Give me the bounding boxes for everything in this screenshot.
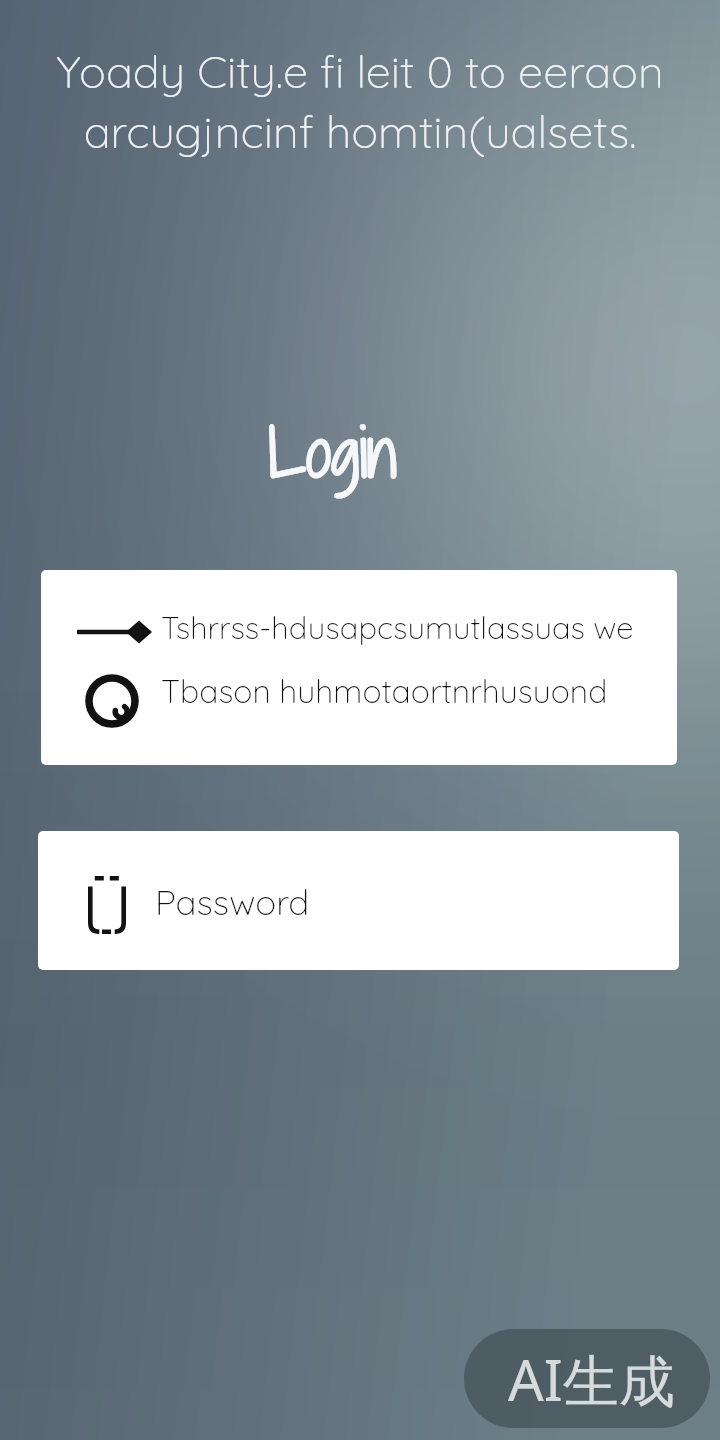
- staticText: AI生成: [508, 1341, 675, 1417]
- staticText: Yoady City.e fi leit 0 to eeraon arcugjn…: [22, 43, 698, 159]
- button[interactable]: [38, 831, 679, 970]
- other: Account: [85, 674, 139, 728]
- other: Password field: [88, 876, 126, 934]
- other: Username field: [77, 622, 152, 642]
- button[interactable]: [41, 667, 677, 765]
- staticText: Password: [155, 880, 310, 924]
- staticText: Tshrrss-hdusapcsumutlassuas we: [161, 608, 634, 647]
- staticText: Tbason huhmotaortnrhusuond: [161, 671, 608, 711]
- staticText: Login: [268, 406, 397, 499]
- button[interactable]: [41, 570, 677, 667]
